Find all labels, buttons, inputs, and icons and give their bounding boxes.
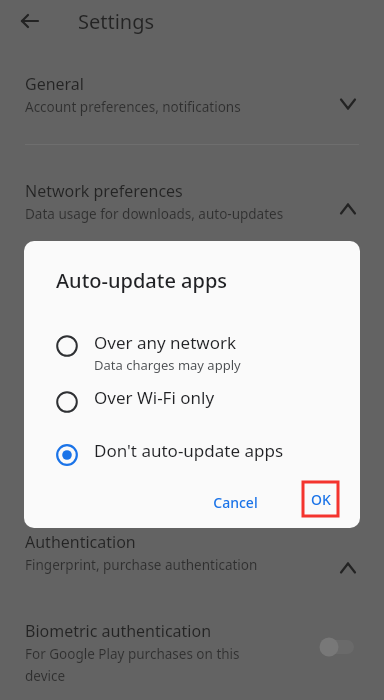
- staticText: Over Wi-Fi only: [94, 386, 215, 409]
- button[interactable]: Network preferences: [0, 171, 384, 233]
- staticText: Don't auto-update apps: [94, 439, 284, 462]
- button[interactable]: Don't auto-update apps: [24, 439, 360, 473]
- staticText: Cancel: [213, 493, 258, 512]
- button[interactable]: Over Wi-Fi only: [24, 386, 360, 420]
- button[interactable]: Biometric authentication toggle: [316, 635, 358, 659]
- button[interactable]: OK: [303, 482, 338, 516]
- staticText: OK: [311, 490, 331, 509]
- button[interactable]: Over any network: [24, 331, 360, 377]
- button[interactable]: Expand: [332, 88, 364, 120]
- staticText: device: [25, 667, 66, 685]
- staticText: General: [25, 73, 84, 95]
- staticText: Network preferences: [25, 180, 183, 202]
- button[interactable]: Collapse: [332, 552, 364, 584]
- staticText: Over any network: [94, 331, 237, 354]
- button[interactable]: Cancel: [202, 486, 268, 518]
- staticText: Settings: [78, 8, 155, 35]
- button[interactable]: Back: [14, 5, 46, 37]
- button[interactable]: General: [0, 62, 384, 124]
- button[interactable]: Biometric authentication: [0, 617, 384, 700]
- staticText: Data charges may apply: [94, 356, 241, 374]
- staticText: Data usage for downloads, auto-updates: [25, 205, 284, 223]
- staticText: Fingerprint, purchase authentication: [25, 556, 258, 574]
- staticText: Biometric authentication: [25, 620, 212, 642]
- button[interactable]: Collapse: [332, 193, 364, 225]
- staticText: Authentication: [25, 531, 136, 553]
- staticText: Auto-update apps: [56, 267, 228, 294]
- button[interactable]: Authentication: [0, 528, 384, 590]
- staticText: Account preferences, notifications: [25, 98, 241, 116]
- staticText: For Google Play purchases on this: [25, 645, 240, 663]
